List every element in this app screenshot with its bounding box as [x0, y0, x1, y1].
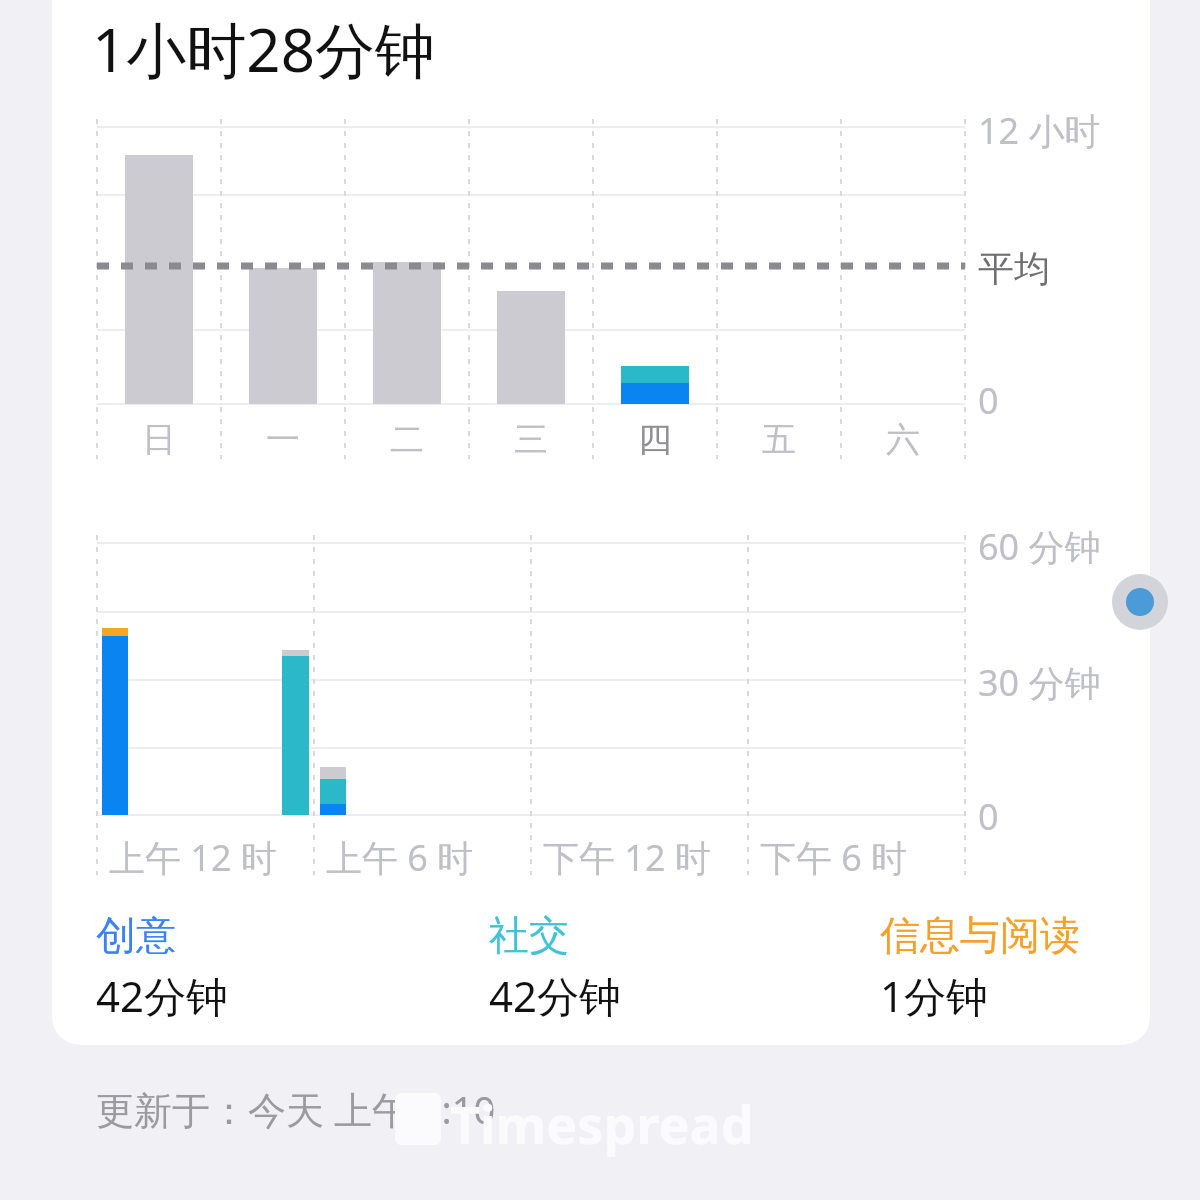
button[interactable]	[52, 0, 1150, 1045]
button[interactable]: Page indicator	[1112, 574, 1168, 630]
